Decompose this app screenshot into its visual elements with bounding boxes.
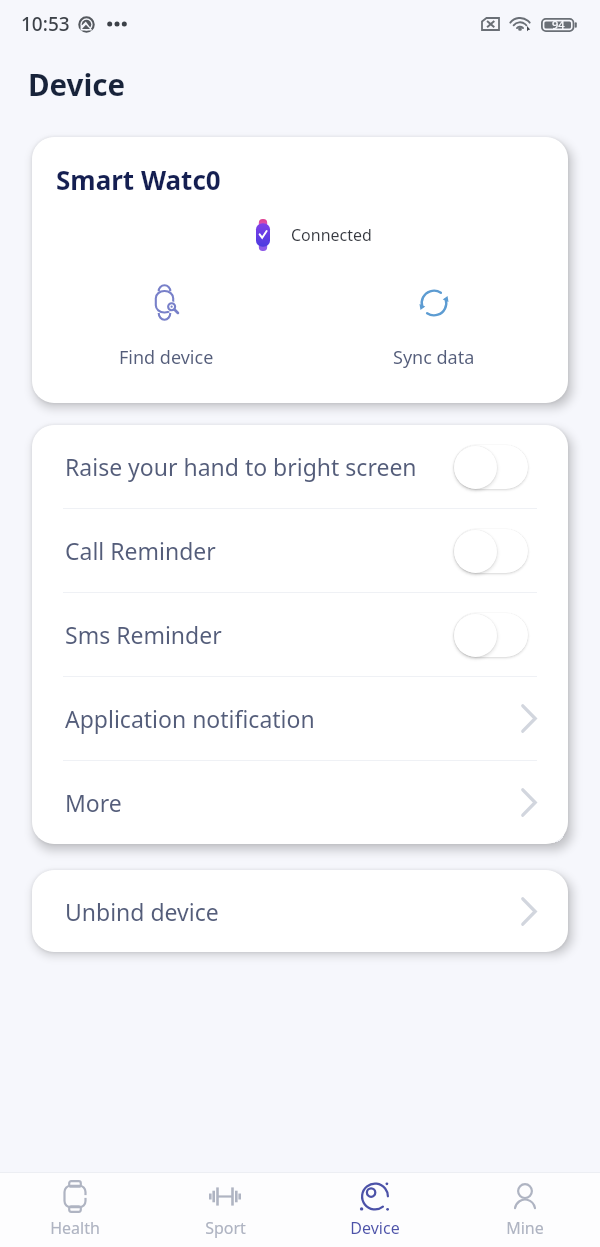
staticText: 94 (552, 17, 565, 32)
staticText: Device (350, 1217, 400, 1239)
staticText: Smart Watc0 (56, 162, 221, 197)
staticText: Mine (506, 1217, 544, 1239)
staticText: More (65, 787, 122, 818)
button[interactable]: Toggle Raise your hand to bright screen (454, 445, 528, 489)
button[interactable]: Toggle Sms Reminder (454, 613, 528, 657)
button[interactable]: Health (0, 1173, 150, 1247)
staticText: Sync data (393, 345, 475, 370)
staticText: Application notification (65, 703, 315, 734)
button[interactable]: More (32, 761, 568, 844)
staticText: Find device (119, 345, 214, 370)
staticText: Health (50, 1217, 100, 1239)
staticText: Connected (291, 224, 372, 246)
staticText: Raise your hand to bright screen (65, 451, 417, 482)
button[interactable]: Application notification (32, 677, 568, 760)
button[interactable]: Device (300, 1173, 450, 1247)
staticText: Sms Reminder (65, 619, 222, 650)
button[interactable]: Unbind device (32, 870, 568, 952)
staticText: Sport (205, 1217, 246, 1239)
button[interactable]: Sport (150, 1173, 300, 1247)
button[interactable]: Find device (32, 283, 300, 370)
button[interactable]: Call Reminder (32, 509, 568, 592)
button[interactable]: Toggle Call Reminder (454, 529, 528, 573)
button[interactable]: Mine (450, 1173, 600, 1247)
staticText: Unbind device (65, 896, 219, 927)
button[interactable]: Sms Reminder (32, 593, 568, 676)
staticText: Device (28, 64, 126, 104)
staticText: Call Reminder (65, 535, 216, 566)
button[interactable]: Raise your hand to bright screen (32, 425, 568, 508)
staticText: 10:53 (21, 11, 70, 37)
button[interactable]: Sync data (300, 283, 568, 370)
